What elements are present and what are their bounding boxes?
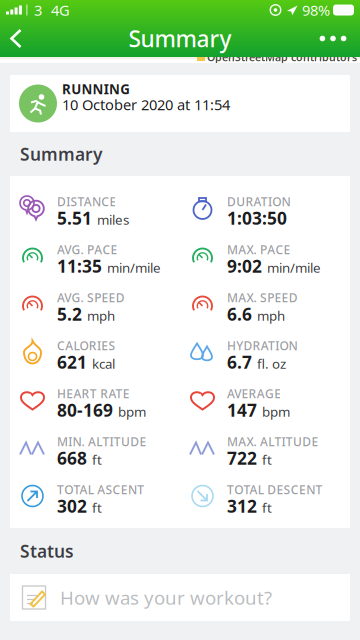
staticText: AVG. PACE xyxy=(57,241,118,257)
staticText: 312 xyxy=(227,494,257,517)
staticText: 11:35 xyxy=(57,254,102,277)
staticText: 9:02 xyxy=(227,254,262,277)
staticText: min/mile xyxy=(267,259,321,276)
staticText: bpm xyxy=(262,403,290,420)
staticText: bpm xyxy=(118,403,146,420)
staticText: 621 xyxy=(57,350,87,373)
staticText: How was your workout? xyxy=(60,585,272,610)
staticText: HYDRATION xyxy=(227,337,298,353)
staticText: ft xyxy=(262,451,272,468)
staticText: 6.7 xyxy=(227,350,252,373)
staticText: Summary xyxy=(20,142,102,165)
button[interactable]: Back xyxy=(0,20,38,57)
staticText: MIN. ALTITUDE xyxy=(57,433,146,449)
staticText: DISTANCE xyxy=(57,193,116,209)
staticText: mph xyxy=(87,307,115,324)
staticText: 4G xyxy=(51,0,70,20)
staticText: Summary xyxy=(128,23,231,53)
staticText: ft xyxy=(92,499,102,516)
staticText: 5.51 xyxy=(57,206,92,229)
staticText: 1:03:50 xyxy=(227,206,287,229)
button[interactable]: How was your workout? xyxy=(10,574,350,621)
staticText: min/mile xyxy=(107,259,161,276)
staticText: TOTAL ASCENT xyxy=(57,481,144,497)
staticText: MAX. SPEED xyxy=(227,289,298,305)
staticText: 3 xyxy=(34,0,42,20)
staticText: CALORIES xyxy=(57,337,115,353)
staticText: AVG. SPEED xyxy=(57,289,125,305)
staticText: ft xyxy=(262,499,272,516)
staticText: kcal xyxy=(92,355,115,372)
staticText: 668 xyxy=(57,446,87,469)
button[interactable]: More xyxy=(318,19,360,57)
staticText: MAX. ALTITUDE xyxy=(227,433,318,449)
staticText: TOTAL DESCENT xyxy=(227,481,322,497)
staticText: OpenStreetMap contributors xyxy=(207,50,357,64)
staticText: 302 xyxy=(57,494,87,517)
staticText: ft xyxy=(92,451,102,468)
staticText: HEART RATE xyxy=(57,385,130,401)
staticText: MAX. PACE xyxy=(227,241,291,257)
staticText: 147 xyxy=(227,398,257,421)
staticText: 5.2 xyxy=(57,302,82,325)
staticText: 722 xyxy=(227,446,257,469)
staticText: 6.6 xyxy=(227,302,252,325)
staticText: AVERAGE xyxy=(227,385,281,401)
staticText: fl. oz xyxy=(257,355,286,372)
staticText: mph xyxy=(257,307,285,324)
staticText: RUNNING xyxy=(62,80,130,98)
staticText: Status xyxy=(20,539,74,562)
staticText: 80-169 xyxy=(57,398,113,421)
staticText: DURATION xyxy=(227,193,290,209)
staticText: 98% xyxy=(302,0,330,20)
staticText: 10 October 2020 at 11:54 xyxy=(62,95,230,114)
staticText: miles xyxy=(97,211,129,228)
